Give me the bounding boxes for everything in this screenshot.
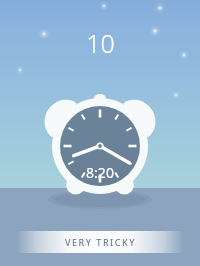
button[interactable]: Alarm clock showing 8:20 — [40, 82, 160, 204]
staticText: 8:20 — [86, 163, 114, 182]
staticText: VERY TRICKY — [65, 236, 136, 248]
button[interactable]: VERY TRICKY — [0, 231, 200, 253]
staticText: 10 — [86, 26, 115, 60]
